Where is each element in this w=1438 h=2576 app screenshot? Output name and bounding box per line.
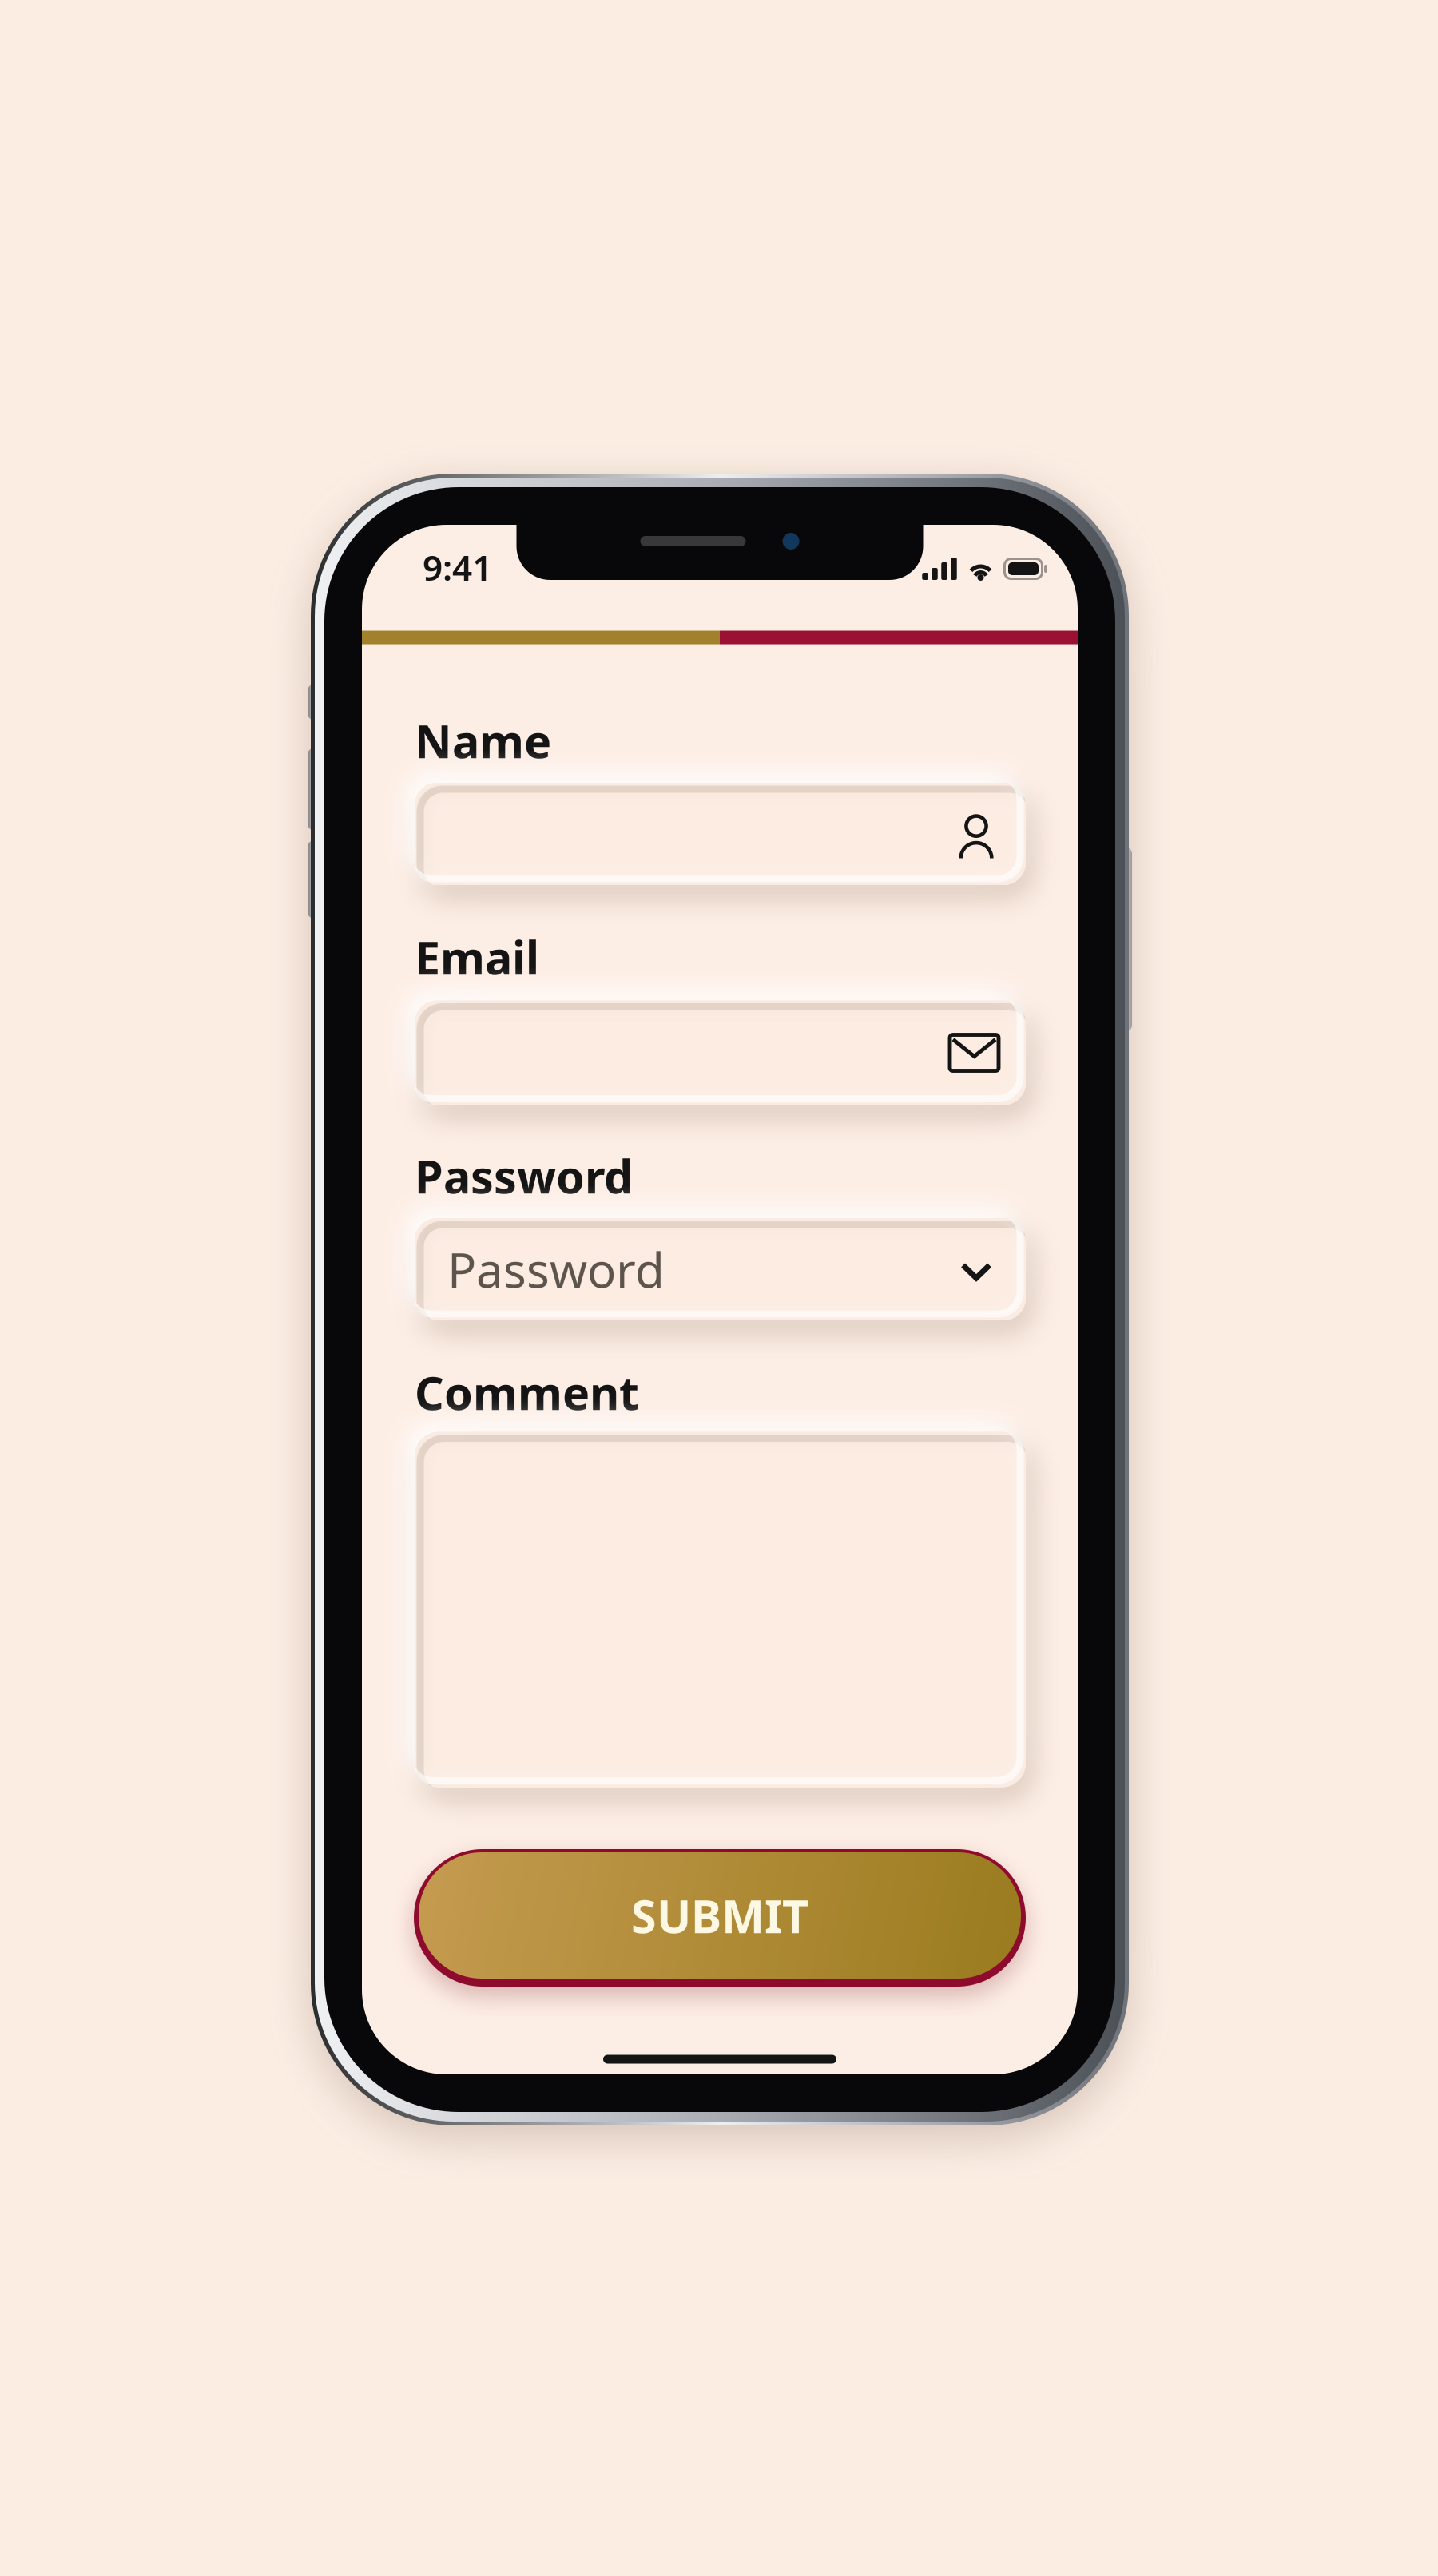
staticText: Password bbox=[447, 1237, 665, 1301]
staticText: SUBMIT bbox=[631, 1885, 808, 1946]
button[interactable]: Password bbox=[415, 1218, 1026, 1320]
staticText: Email bbox=[415, 926, 539, 987]
staticText: Password bbox=[415, 1145, 633, 1206]
staticText: Name bbox=[415, 710, 551, 771]
button[interactable]: SUBMIT bbox=[414, 1843, 1026, 1988]
button[interactable]: Comment bbox=[415, 1432, 1026, 1787]
staticText: 9:41 bbox=[423, 544, 492, 590]
staticText: Comment bbox=[415, 1362, 639, 1423]
button[interactable]: Name bbox=[415, 783, 1026, 885]
button[interactable]: Email bbox=[415, 1000, 1026, 1105]
